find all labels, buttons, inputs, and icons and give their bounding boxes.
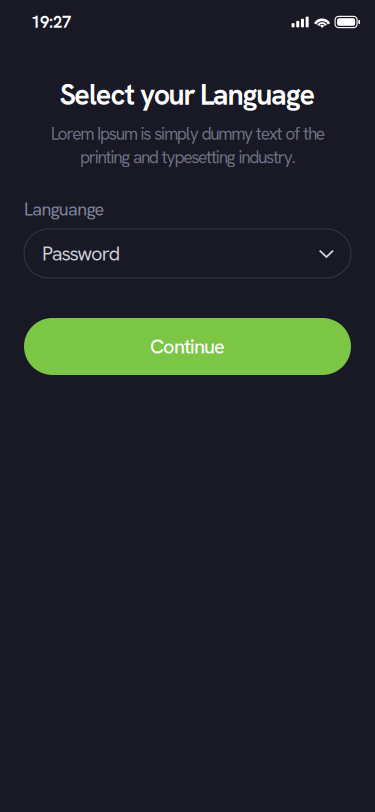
staticText: Lorem Ipsum is simply dummy text of the … — [50, 122, 325, 169]
button[interactable]: Password — [24, 229, 351, 278]
staticText: Select your Language — [59, 76, 316, 113]
staticText: Continue — [150, 333, 225, 359]
staticText: Languange — [24, 197, 105, 221]
button[interactable]: Continue — [24, 318, 351, 375]
staticText: Password — [42, 240, 121, 266]
staticText: 19:27 — [31, 11, 71, 33]
